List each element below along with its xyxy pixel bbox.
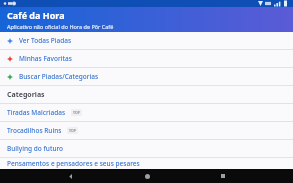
staticText: Café da Hora [7, 9, 65, 21]
button[interactable]: Bullying do futuro [0, 140, 293, 157]
button[interactable]: Pensamentos e pensadores e seus pesares [0, 158, 293, 169]
button[interactable]: Buscar Piadas/Categorias [0, 68, 293, 85]
button[interactable]: Recent apps [216, 169, 230, 183]
staticText: Tiradas Malcriadas [7, 108, 66, 117]
button[interactable]: Trocadilhos Ruins [0, 122, 293, 139]
button[interactable]: Back [63, 169, 77, 183]
staticText: Ver Todas Piadas [19, 36, 72, 45]
button[interactable]: Tiradas Malcriadas [0, 104, 293, 121]
staticText: TOP [69, 128, 76, 133]
staticText: Trocadilhos Ruins [7, 126, 62, 135]
button[interactable]: Ver Todas Piadas [0, 32, 293, 49]
button[interactable]: Minhas Favoritas [0, 50, 293, 67]
staticText: Minhas Favoritas [19, 54, 72, 63]
staticText: Categorias [7, 90, 45, 100]
staticText: Bullying do futuro [7, 144, 64, 153]
staticText: Buscar Piadas/Categorias [19, 72, 99, 81]
staticText: Pensamentos e pensadores e seus pesares [7, 159, 140, 168]
staticText: Aplicativo não oficial do Hora de Pôr Ca… [7, 23, 114, 30]
staticText: TOP [73, 110, 80, 115]
button[interactable]: Home [140, 169, 154, 183]
